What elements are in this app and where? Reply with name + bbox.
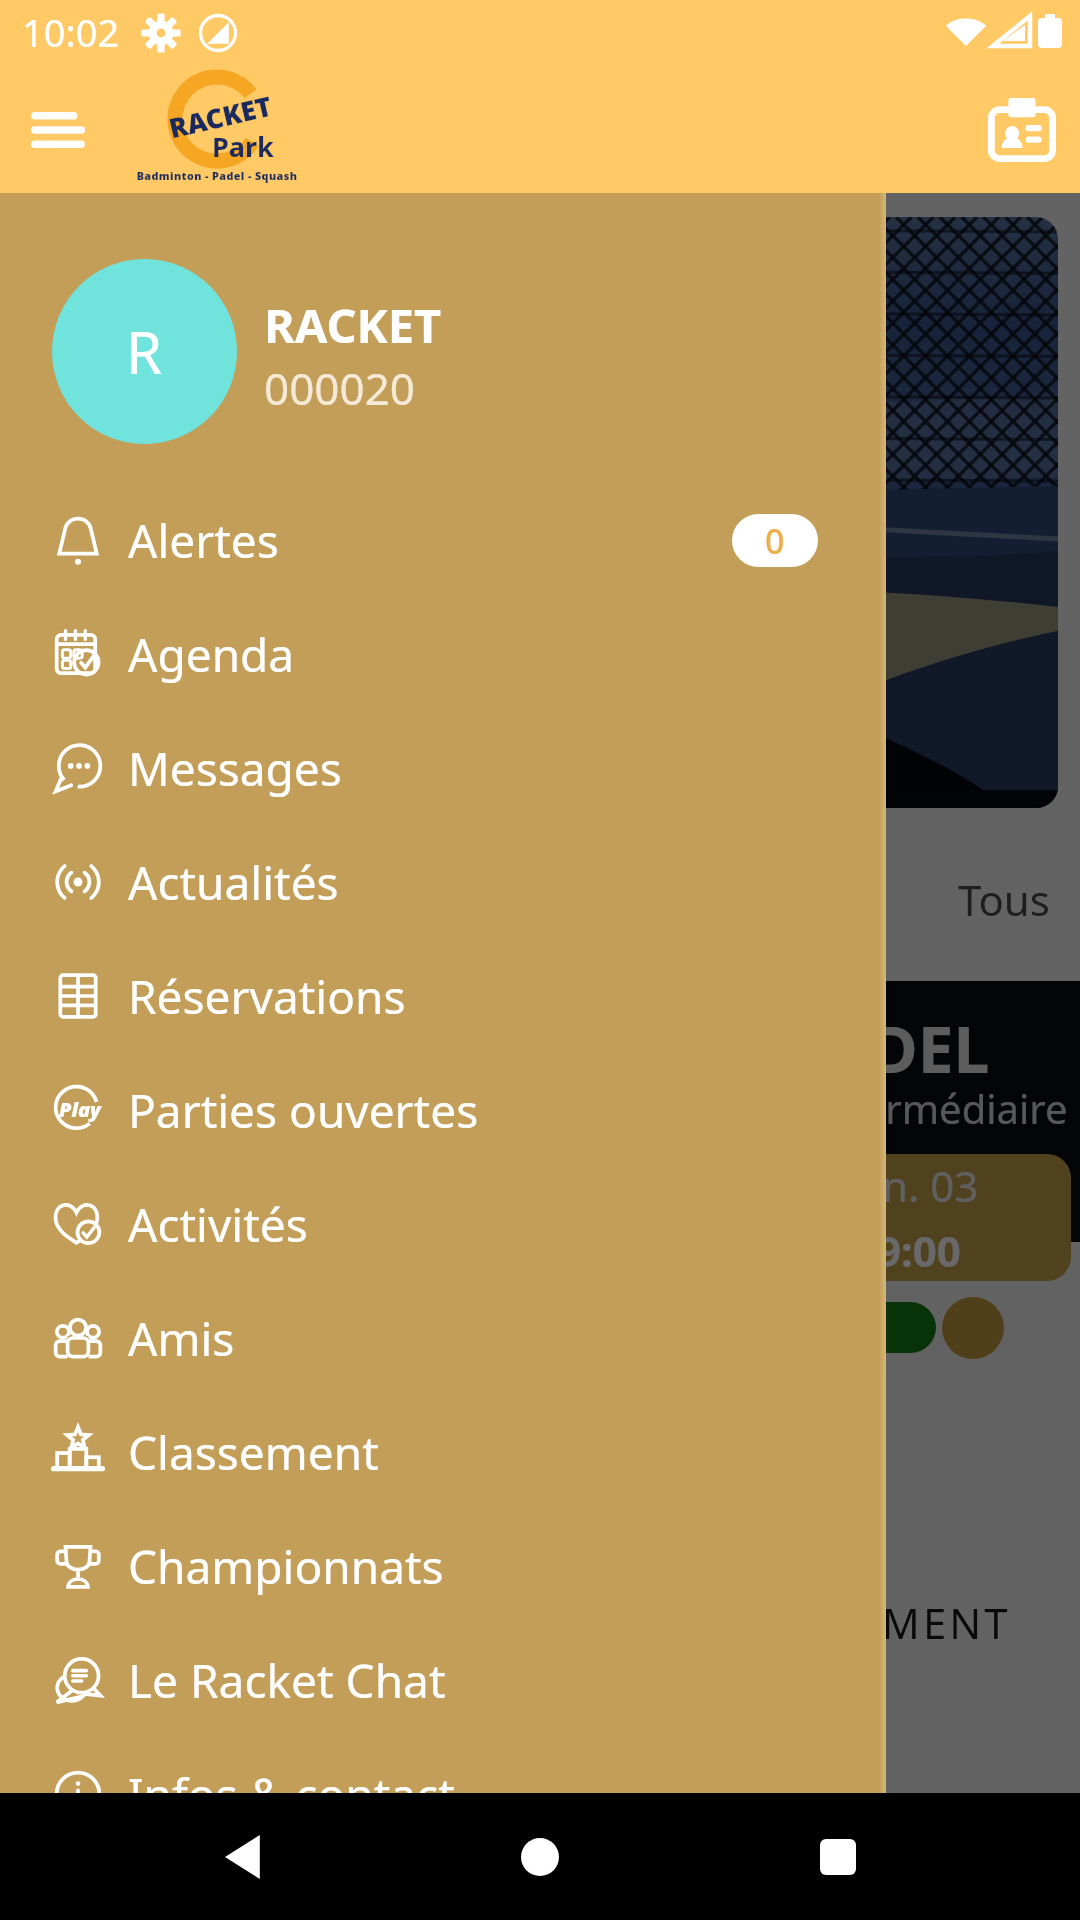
staticText: RACKET: [165, 87, 276, 146]
button[interactable]: Member card: [972, 80, 1072, 180]
button[interactable]: Le Racket Chat: [0, 1623, 886, 1737]
staticText: Padel: [60, 871, 170, 928]
staticText: Messages: [128, 737, 342, 800]
staticText: Badminton: [311, 871, 531, 928]
staticText: Play: [59, 1096, 101, 1123]
staticText: Niveaux 4.Intermédiaire: [614, 1081, 1068, 1135]
button[interactable]: Alertes: [0, 483, 886, 597]
staticText: Actualités: [128, 851, 339, 914]
staticText: 0: [765, 518, 785, 564]
staticText: PADEL: [790, 1005, 990, 1092]
staticText: RACKET: [264, 293, 442, 357]
staticText: 000020: [264, 358, 416, 418]
staticText: Ven. 03: [834, 1157, 979, 1214]
button[interactable]: Actualités: [0, 825, 886, 939]
staticText: Agenda: [128, 623, 295, 686]
button[interactable]: Home: [485, 1802, 595, 1912]
staticText: R: [126, 312, 163, 391]
button[interactable]: Classement: [0, 1395, 886, 1509]
button[interactable]: Messages: [0, 711, 886, 825]
button[interactable]: Open navigation menu: [8, 80, 108, 180]
button[interactable]: Play: [0, 1053, 886, 1167]
staticText: Badminton - Padel - Squash: [122, 168, 312, 183]
staticText: Classement: [128, 1421, 379, 1484]
staticText: Activités: [128, 1193, 308, 1256]
button[interactable]: Championnats: [0, 1509, 886, 1623]
button[interactable]: Close navigation menu: [0, 193, 1080, 1793]
staticText: Le Racket Chat: [128, 1649, 446, 1712]
staticText: Park: [212, 128, 274, 165]
staticText: Réservations: [128, 965, 406, 1028]
staticText: Parties ouvertes: [128, 1079, 479, 1142]
staticText: Alertes: [128, 509, 279, 572]
button[interactable]: Back: [188, 1802, 298, 1912]
staticText: 10:02: [22, 6, 120, 58]
staticText: CLASSEMENT: [719, 1594, 1011, 1651]
button[interactable]: Agenda: [0, 597, 886, 711]
staticText: Championnats: [128, 1535, 444, 1598]
button[interactable]: Activités: [0, 1167, 886, 1281]
staticText: Amis: [128, 1307, 235, 1370]
staticText: 19:00: [853, 1222, 961, 1279]
button[interactable]: Infos & contact: [0, 1737, 886, 1793]
button[interactable]: Recent apps: [783, 1802, 893, 1912]
staticText: Infos & contact: [128, 1763, 455, 1793]
button[interactable]: Réservations: [0, 939, 886, 1053]
staticText: Tous: [958, 871, 1050, 928]
button[interactable]: Amis: [0, 1281, 886, 1395]
